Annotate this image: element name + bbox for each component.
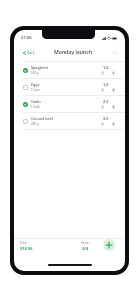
staticText: 1 bulb: [31, 105, 40, 109]
button[interactable]: Eggs: [14, 79, 125, 95]
staticText: 21:06: [21, 35, 32, 41]
button[interactable]: Back: [23, 50, 35, 55]
staticText: Back: [27, 50, 35, 55]
staticText: 1.0: [103, 65, 109, 70]
button[interactable]: Decrease quantity: [101, 122, 104, 126]
staticText: 12 pcs: [31, 88, 40, 92]
button[interactable]: Ground beef: [14, 113, 125, 129]
staticText: Eggs: [31, 82, 40, 87]
button[interactable]: Decrease quantity: [101, 71, 104, 75]
button[interactable]: Decrease quantity: [101, 105, 104, 109]
button[interactable]: Increase quantity: [112, 105, 115, 109]
staticText: Items: [81, 241, 89, 245]
button[interactable]: Increase quantity: [112, 122, 115, 126]
button[interactable]: Add item: [103, 239, 115, 251]
staticText: 2.0: [103, 99, 109, 104]
staticText: 3/4: [82, 246, 89, 251]
staticText: Garlic: [31, 99, 42, 104]
staticText: $18.96: [20, 246, 33, 251]
button[interactable]: Increase quantity: [112, 88, 115, 92]
button[interactable]: Decrease quantity: [101, 88, 104, 92]
staticText: Ground beef: [31, 116, 54, 121]
staticText: 400 g: [31, 122, 39, 126]
button[interactable]: Increase quantity: [112, 71, 115, 75]
button[interactable]: Garlic: [14, 96, 125, 112]
button[interactable]: More options: [111, 49, 118, 56]
staticText: 3.0: [103, 116, 109, 121]
staticText: Spaghetti: [31, 65, 48, 70]
staticText: Monday launch: [54, 49, 93, 56]
staticText: 500 g: [31, 71, 39, 75]
button[interactable]: Spaghetti: [14, 62, 125, 78]
staticText: 1.0: [103, 82, 109, 87]
staticText: Total: [20, 241, 27, 245]
